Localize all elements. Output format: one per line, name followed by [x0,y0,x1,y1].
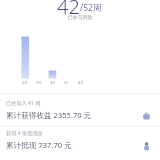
staticText: 已经加入 41 周 [6,99,41,106]
staticText: 39 [36,80,41,86]
button[interactable]: Coupon detail [142,142,152,152]
staticText: 已参与周数 [0,14,160,20]
staticText: 42 [78,80,83,86]
button[interactable]: 获得 4 张抵现金 [6,129,72,150]
staticText: 累计抵现 737.70 元 [6,140,72,150]
staticText: 42 [57,0,80,20]
button[interactable]: Earnings detail [142,111,152,121]
staticText: 38 [22,80,27,86]
staticText: 41 [64,80,69,86]
staticText: 40 [50,80,55,86]
button[interactable]: 已经加入 41 周 [6,99,92,120]
staticText: 累计获得收益 2355.70 元 [6,110,92,120]
staticText: /52周 [80,2,102,14]
staticText: 获得 4 张抵现金 [6,129,43,136]
